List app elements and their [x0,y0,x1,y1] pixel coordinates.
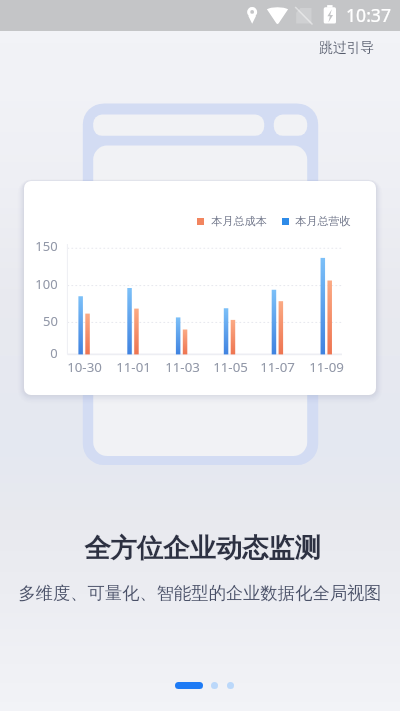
staticText: 11-05 [213,358,248,376]
staticText: 11-07 [260,358,295,376]
staticText: 10-30 [67,358,102,376]
staticText: 11-09 [309,358,344,376]
staticText: 全方位企业动态监测 [84,532,321,565]
button[interactable]: Page 3 [227,682,234,689]
button[interactable]: Page 1 [175,682,203,689]
staticText: 11-01 [116,358,151,376]
button[interactable]: Page 2 [211,682,218,689]
staticText: 11-03 [165,358,200,376]
staticText: 跳过引导 [319,39,374,56]
button[interactable]: 跳过引导 [311,31,382,64]
staticText: 0 [50,344,58,362]
staticText: 150 [35,237,58,255]
staticText: 10:37 [346,3,391,27]
staticText: 多维度、可量化、智能型的企业数据化全局视图 [18,582,382,604]
staticText: 50 [43,312,58,330]
staticText: 本月总成本 [211,214,267,228]
staticText: 本月总营收 [295,214,351,228]
staticText: 100 [35,275,58,293]
